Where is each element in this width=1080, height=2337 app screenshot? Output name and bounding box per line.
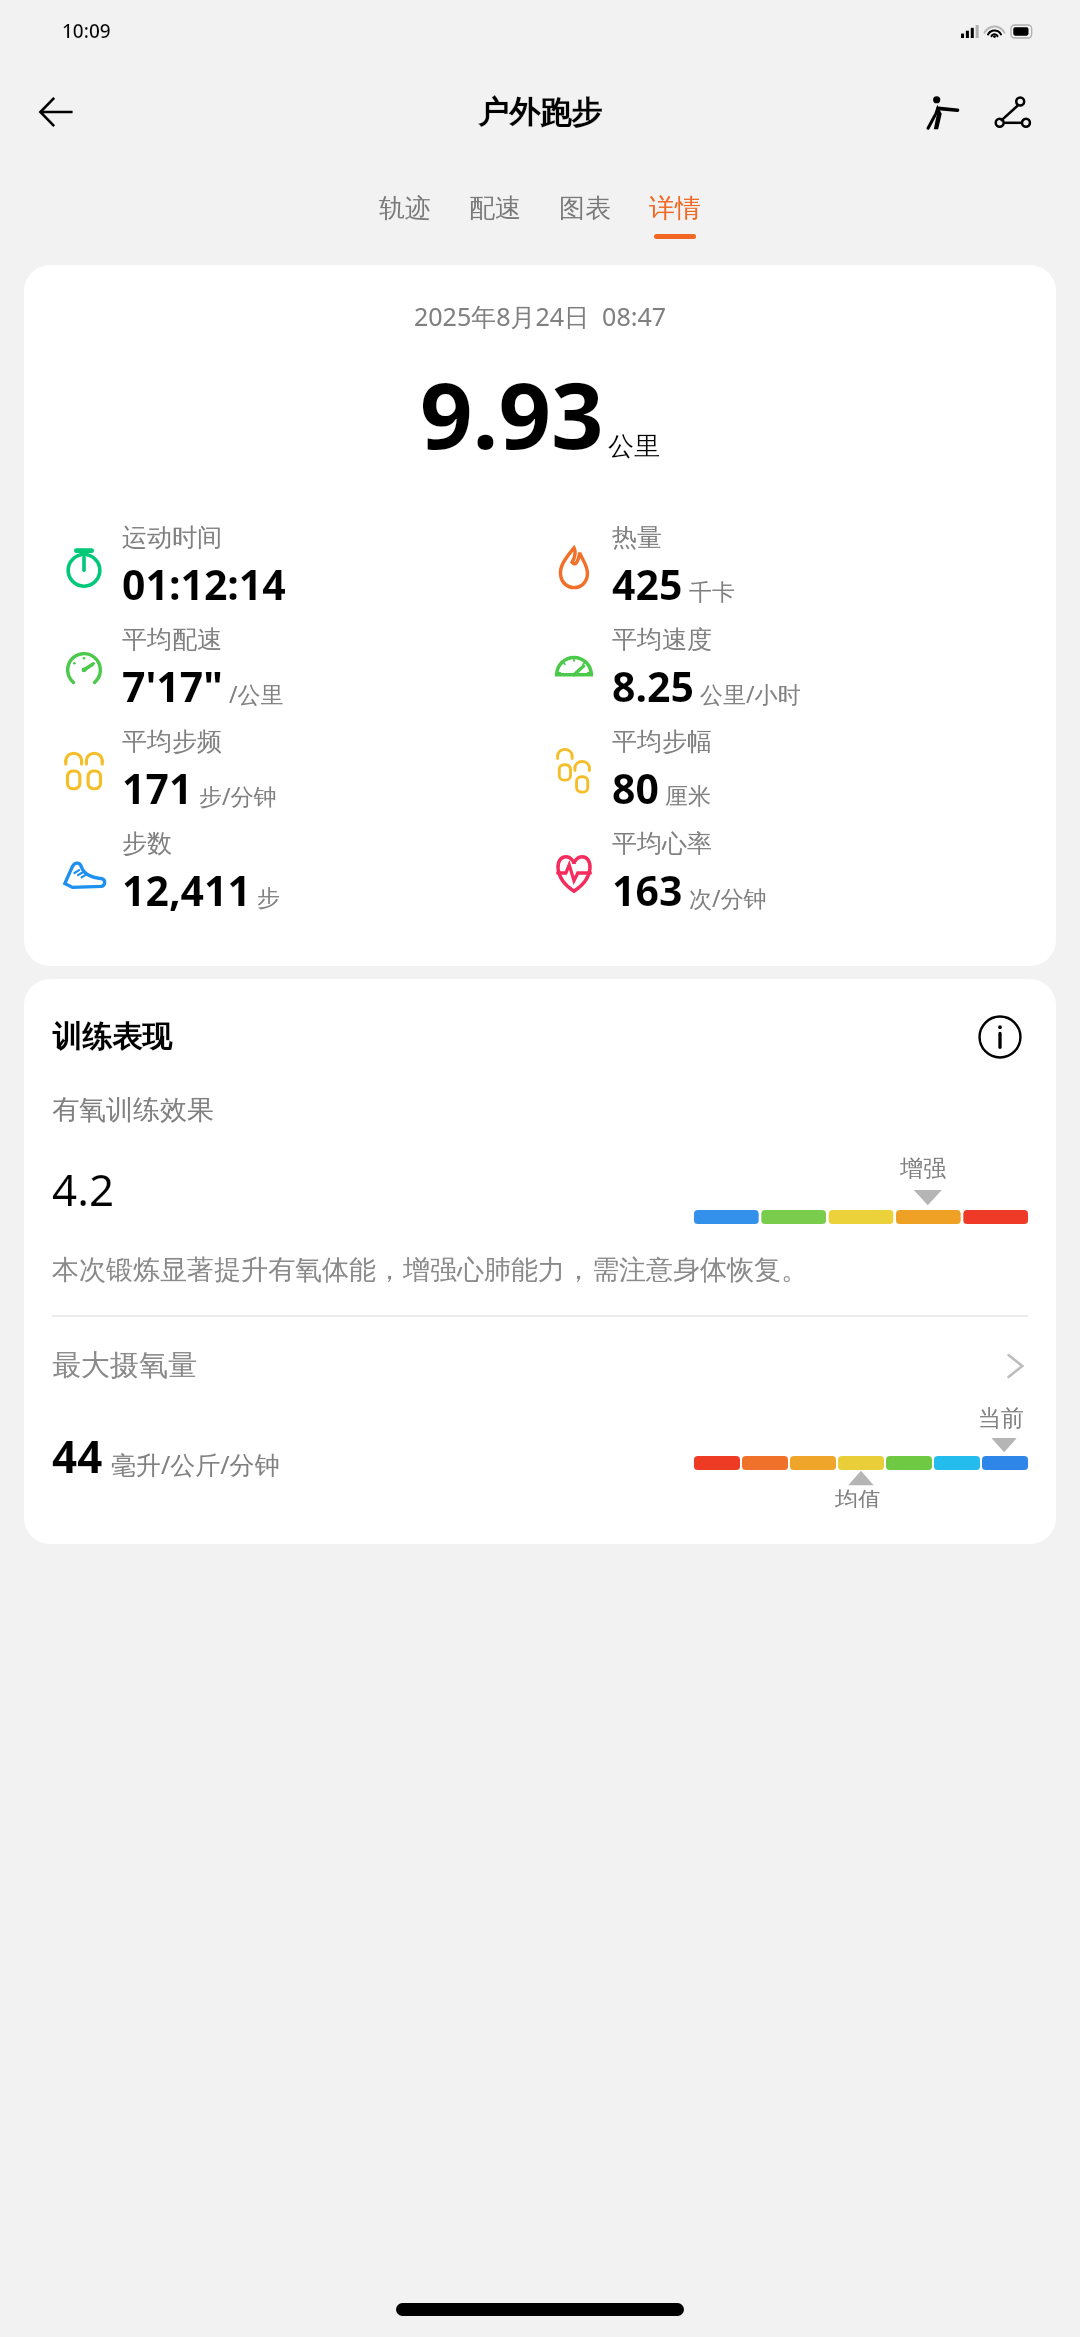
staticText: 公里/小时 xyxy=(700,678,801,709)
staticText: 增强 xyxy=(900,1154,946,1183)
staticText: 均值 xyxy=(835,1486,881,1508)
staticText: 有氧训练效果 xyxy=(52,1093,214,1127)
staticText: 步/分钟 xyxy=(199,780,277,811)
button[interactable]: 配速 xyxy=(450,188,540,243)
button[interactable]: 平均心率 xyxy=(540,822,1056,924)
button[interactable]: 详情 xyxy=(630,188,720,243)
staticText: 4.2 xyxy=(52,1159,115,1219)
staticText: 01:12:14 xyxy=(122,556,286,612)
staticText: 最大摄氧量 xyxy=(52,1347,197,1384)
staticText: 当前 xyxy=(978,1404,1024,1433)
staticText: 步数 xyxy=(122,828,172,859)
staticText: 图表 xyxy=(559,192,611,225)
button[interactable]: 步数 xyxy=(24,822,540,924)
staticText: 厘米 xyxy=(665,782,711,811)
staticText: 425 xyxy=(612,556,683,612)
staticText: 详情 xyxy=(649,192,701,225)
button[interactable]: 平均速度 xyxy=(540,618,1056,720)
staticText: 户外跑步 xyxy=(478,93,602,132)
button[interactable]: 热量 xyxy=(540,516,1056,618)
staticText: 热量 xyxy=(612,522,662,553)
staticText: 平均速度 xyxy=(612,624,712,655)
staticText: 训练表现 xyxy=(52,1018,172,1056)
button[interactable]: 平均步频 xyxy=(24,720,540,822)
button[interactable]: 运动时间 xyxy=(24,516,540,618)
button[interactable]: 轨迹 xyxy=(360,188,450,243)
staticText: 2025年8月24日 08:47 xyxy=(24,299,1056,333)
staticText: 配速 xyxy=(469,192,521,225)
staticText: 轨迹 xyxy=(379,192,431,225)
staticText: 8.25 xyxy=(612,658,694,714)
staticText: 10:09 xyxy=(62,18,111,44)
button[interactable]: Route xyxy=(982,81,1044,143)
button[interactable]: Runner xyxy=(910,81,972,143)
staticText: 44 xyxy=(52,1426,103,1486)
button[interactable]: 平均配速 xyxy=(24,618,540,720)
staticText: 163 xyxy=(612,862,683,918)
staticText: 平均步频 xyxy=(122,726,222,757)
staticText: 公里 xyxy=(608,430,660,463)
staticText: 80 xyxy=(612,760,659,816)
button[interactable]: 图表 xyxy=(540,188,630,243)
staticText: 171 xyxy=(122,760,193,816)
staticText: 步 xyxy=(257,884,280,913)
staticText: 12,411 xyxy=(122,862,251,918)
button[interactable]: 平均步幅 xyxy=(540,720,1056,822)
button[interactable]: Back xyxy=(22,78,90,146)
staticText: 千卡 xyxy=(689,578,735,607)
staticText: /公里 xyxy=(229,678,284,709)
staticText: 7'17" xyxy=(122,658,223,714)
staticText: 运动时间 xyxy=(122,522,222,553)
staticText: 平均步幅 xyxy=(612,726,712,757)
staticText: 次/分钟 xyxy=(689,882,767,913)
staticText: 9.93 xyxy=(420,351,604,476)
staticText: 平均配速 xyxy=(122,624,222,655)
button[interactable]: Info xyxy=(972,1009,1028,1065)
staticText: 本次锻炼显著提升有氧体能，增强心肺能力，需注意身体恢复。 xyxy=(52,1253,808,1287)
staticText: 平均心率 xyxy=(612,828,712,859)
button[interactable]: 最大摄氧量 xyxy=(52,1347,1028,1384)
staticText: 毫升/公斤/分钟 xyxy=(111,1447,280,1481)
